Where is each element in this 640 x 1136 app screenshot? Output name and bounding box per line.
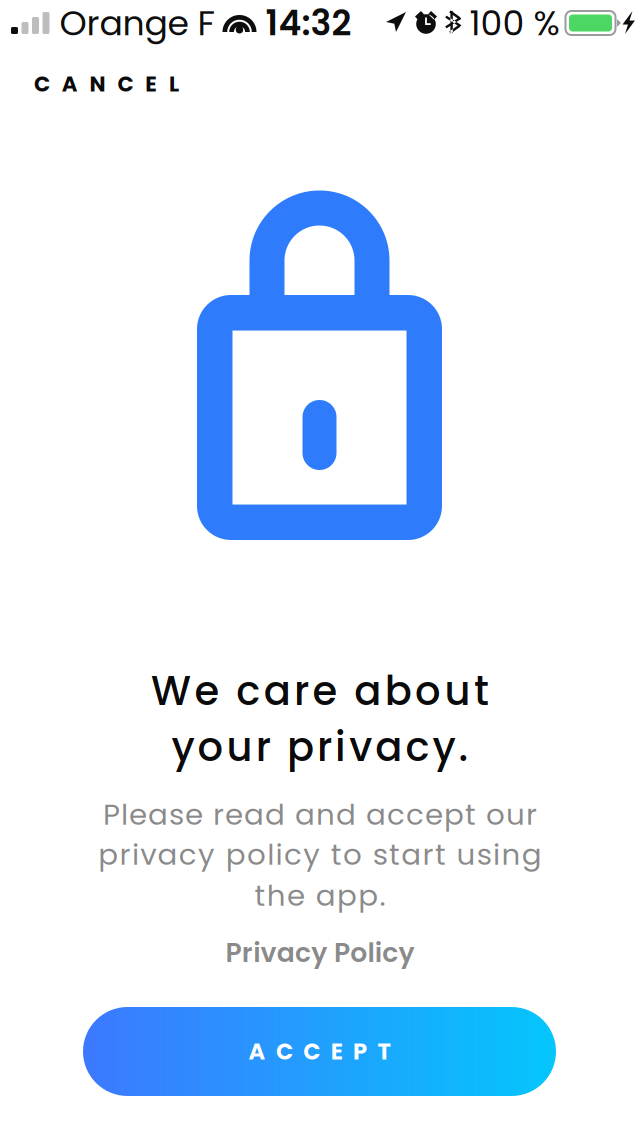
staticText: e	[425, 794, 443, 835]
staticText: N	[90, 69, 106, 99]
staticText: c	[236, 663, 260, 719]
staticText: l	[121, 794, 128, 835]
staticText: t	[389, 834, 400, 875]
staticText: u	[444, 663, 470, 719]
staticText: C	[117, 69, 133, 99]
staticText: P	[103, 794, 120, 835]
staticText: u	[227, 719, 253, 775]
staticText: e	[194, 663, 219, 719]
staticText: n	[316, 794, 335, 835]
staticText: t	[331, 834, 342, 875]
staticText: y	[432, 719, 455, 775]
staticText: p	[98, 834, 118, 875]
staticText: c	[405, 719, 429, 775]
staticText: d	[265, 794, 285, 835]
staticText: e	[129, 794, 147, 835]
staticText: i	[276, 834, 283, 875]
staticText: c	[284, 834, 302, 875]
staticText: o	[486, 794, 505, 835]
staticText: e	[185, 794, 203, 835]
staticText: y	[311, 934, 327, 971]
staticText: a	[375, 719, 402, 775]
staticText: P	[334, 934, 350, 971]
staticText: r	[256, 719, 271, 775]
staticText: L	[169, 69, 179, 99]
staticText: P	[226, 934, 242, 971]
button[interactable]: A	[83, 1007, 556, 1096]
staticText: p	[337, 875, 357, 916]
staticText: r	[423, 834, 434, 875]
staticText: c	[295, 934, 311, 971]
staticText: i	[335, 719, 346, 775]
staticText: c	[406, 794, 424, 835]
staticText: a	[401, 834, 421, 875]
staticText: t	[254, 875, 265, 916]
staticText: c	[382, 934, 398, 971]
staticText: o	[350, 934, 367, 971]
staticText: s	[477, 834, 492, 875]
staticText: p	[287, 719, 314, 775]
staticText: p	[358, 875, 378, 916]
staticText: c	[387, 794, 405, 835]
staticText: s	[373, 834, 388, 875]
staticText: v	[260, 934, 276, 971]
staticText: Orange F	[59, 0, 214, 47]
button[interactable]: C	[0, 46, 256, 122]
staticText: o	[415, 663, 441, 719]
staticText: i	[253, 934, 260, 971]
staticText: r	[294, 663, 309, 719]
staticText: h	[267, 875, 286, 916]
staticText: i	[132, 834, 139, 875]
staticText: A	[62, 69, 78, 99]
staticText: t	[474, 663, 489, 719]
staticText: a	[366, 794, 386, 835]
staticText: p	[444, 794, 464, 835]
staticText: W	[151, 663, 191, 719]
staticText: P	[353, 1036, 367, 1067]
staticText: a	[148, 794, 168, 835]
staticText: a	[264, 663, 291, 719]
staticText: T	[377, 1036, 390, 1067]
staticText: o	[197, 719, 223, 775]
staticText: u	[456, 834, 475, 875]
staticText: .	[379, 875, 385, 916]
staticText: n	[501, 834, 520, 875]
staticText: i	[493, 834, 500, 875]
staticText: o	[343, 834, 362, 875]
staticText: a	[295, 794, 315, 835]
staticText: t	[435, 834, 446, 875]
staticText: 14:32	[265, 0, 351, 47]
staticText: a	[354, 663, 381, 719]
staticText: v	[349, 719, 372, 775]
staticText: y	[303, 834, 320, 875]
staticText: C	[276, 1036, 293, 1067]
staticText: d	[336, 794, 356, 835]
staticText: u	[506, 794, 525, 835]
staticText: e	[225, 794, 243, 835]
staticText: C	[34, 69, 50, 99]
staticText: l	[368, 934, 375, 971]
staticText: a	[157, 834, 177, 875]
staticText: r	[242, 934, 253, 971]
staticText: p	[226, 834, 246, 875]
staticText: r	[120, 834, 131, 875]
staticText: g	[522, 834, 542, 875]
staticText: a	[277, 934, 295, 971]
button[interactable]: P	[200, 918, 440, 987]
staticText: e	[312, 663, 337, 719]
staticText: o	[247, 834, 266, 875]
staticText: C	[303, 1036, 320, 1067]
staticText: r	[317, 719, 332, 775]
staticText: y	[171, 719, 194, 775]
staticText: s	[169, 794, 184, 835]
